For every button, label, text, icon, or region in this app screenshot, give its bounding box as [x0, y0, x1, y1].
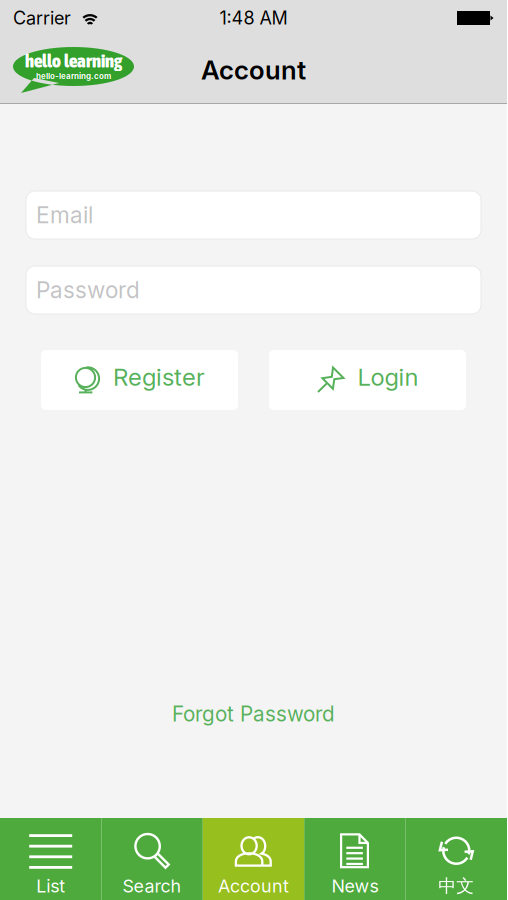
staticText: hello-learning.com [36, 71, 111, 81]
staticText: News [331, 875, 378, 897]
staticText: 中文 [438, 875, 474, 897]
staticText: Search [123, 875, 182, 897]
button[interactable]: List [0, 818, 101, 900]
button[interactable]: 中文 [406, 818, 507, 900]
button[interactable]: Email [26, 191, 481, 239]
button[interactable]: Search [101, 818, 203, 900]
button[interactable]: News [304, 818, 406, 900]
staticText: Password [36, 276, 140, 304]
staticText: Forgot Password [172, 701, 335, 726]
button[interactable]: Account [203, 818, 304, 900]
staticText: 1:48 AM [219, 7, 287, 29]
staticText: hello learning [25, 50, 122, 71]
staticText: Email [36, 201, 93, 229]
button[interactable]: Password [26, 266, 481, 314]
staticText: Carrier [13, 7, 71, 29]
staticText: Register [113, 362, 205, 391]
button[interactable]: Login [269, 350, 466, 410]
button[interactable]: Register [41, 350, 238, 410]
staticText: Account [201, 54, 306, 86]
button[interactable]: Forgot Password [26, 692, 481, 736]
staticText: List [36, 875, 65, 897]
staticText: Account [218, 875, 289, 897]
staticText: Login [357, 362, 418, 391]
